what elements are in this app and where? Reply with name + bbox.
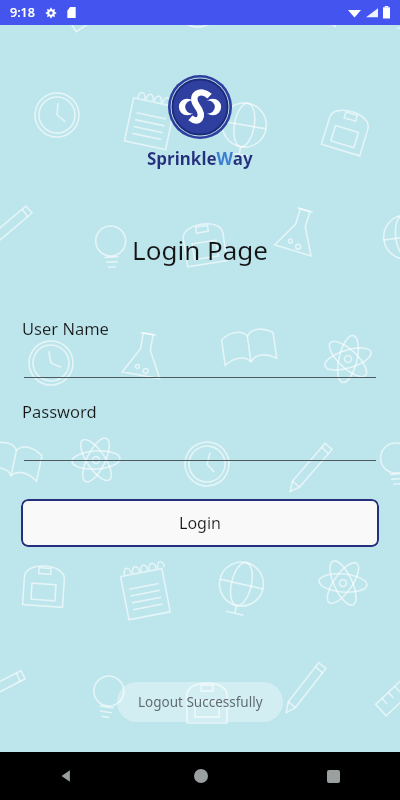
button[interactable]: Recents (267, 752, 400, 800)
button[interactable]: Home (134, 752, 267, 800)
staticText: User Name (22, 317, 109, 339)
button[interactable]: Login (21, 499, 379, 547)
button[interactable]: Back (0, 752, 134, 800)
staticText: Login Page (132, 232, 268, 267)
staticText: 9:18 (10, 4, 35, 21)
staticText: Logout Successfully (138, 693, 263, 711)
staticText: Login (179, 512, 221, 534)
staticText: SprinkleWay (147, 147, 253, 170)
staticText: Password (22, 400, 97, 422)
